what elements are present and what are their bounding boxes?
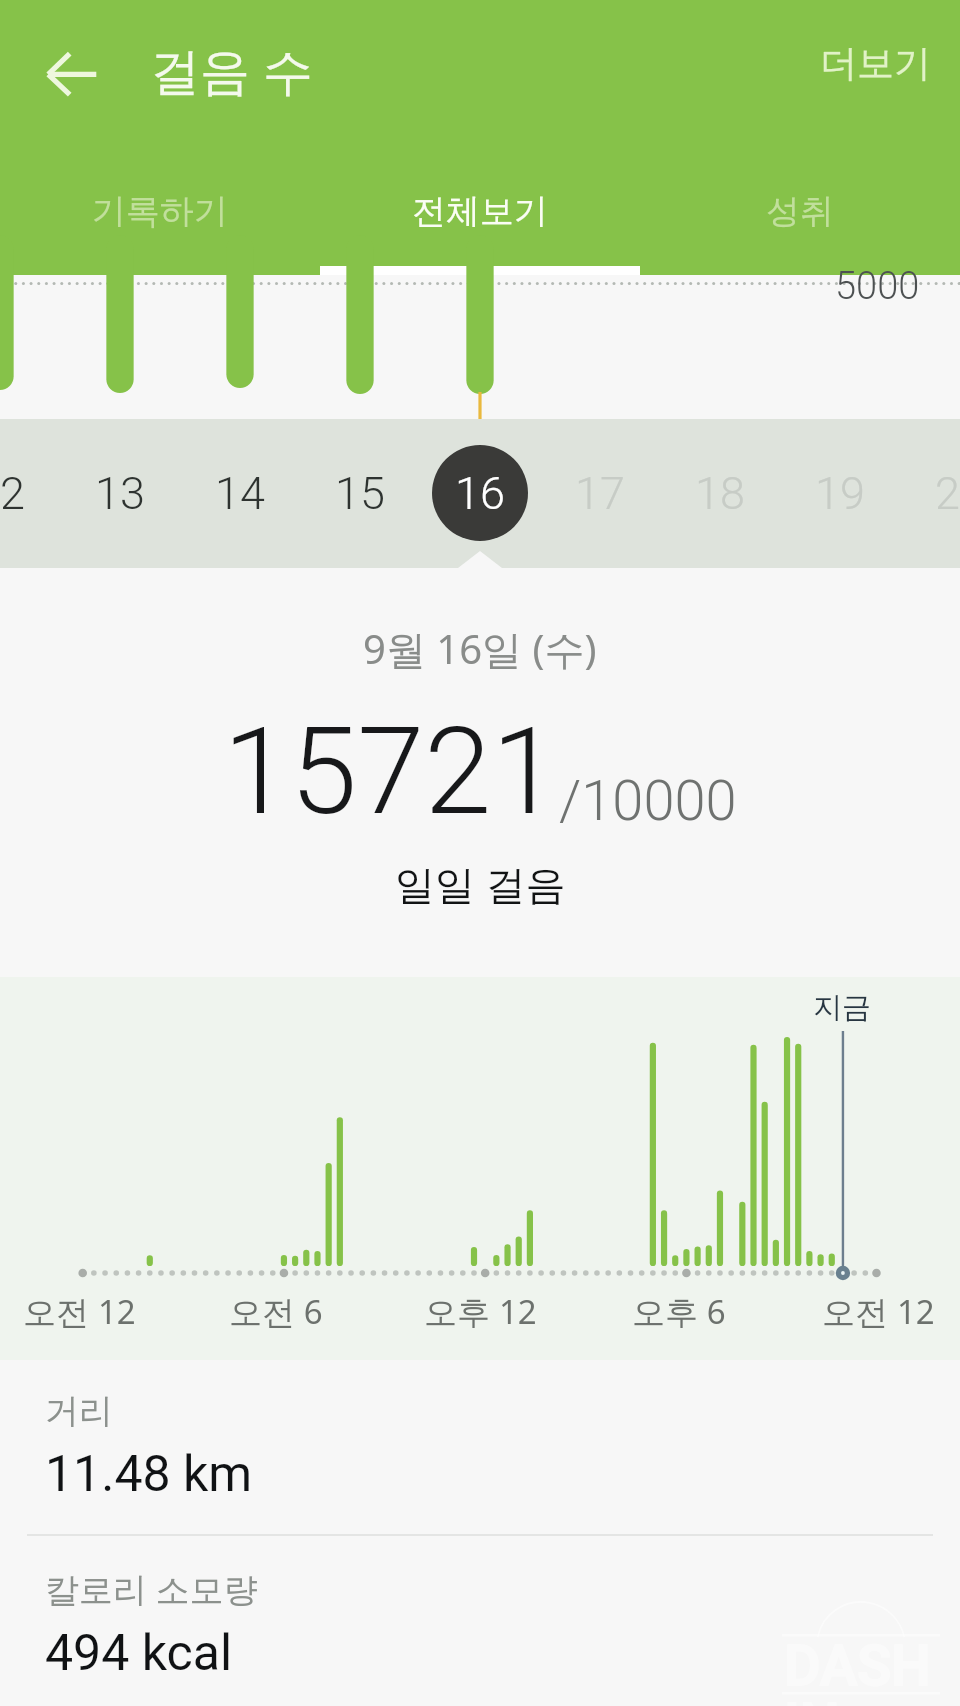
staticText: 18	[695, 467, 745, 520]
staticText: 오전 12	[822, 1289, 935, 1334]
button[interactable]: 15	[300, 419, 420, 568]
staticText: 성취	[766, 190, 834, 233]
button[interactable]: 거리	[0, 1360, 960, 1534]
staticText: 5000	[835, 264, 920, 309]
staticText: 11.48 km	[45, 1445, 253, 1504]
staticText: 더보기	[820, 40, 931, 87]
staticText: 14	[215, 467, 265, 520]
button[interactable]: 칼로리 소모량	[0, 1536, 960, 1706]
staticText: 12	[0, 467, 25, 520]
staticText: 17	[575, 467, 625, 520]
staticText: 오전 12	[23, 1289, 136, 1334]
staticText: 15721	[223, 701, 559, 843]
staticText: 일일 걸음	[395, 856, 566, 911]
staticText: 13	[95, 467, 145, 520]
staticText: 오후 12	[424, 1289, 537, 1334]
staticText: 오전 6	[229, 1289, 323, 1334]
button[interactable]: 16	[420, 419, 540, 568]
staticText: 지금	[813, 989, 871, 1026]
button[interactable]: 기록하기	[0, 148, 320, 275]
staticText: 16	[455, 467, 505, 520]
staticText: 20	[935, 467, 960, 520]
button[interactable]: 18	[660, 419, 780, 568]
staticText: 494 kcal	[45, 1624, 233, 1676]
staticText: 15	[335, 467, 385, 520]
staticText: 19	[815, 467, 865, 520]
button[interactable]: 전체보기	[320, 148, 640, 275]
button[interactable]: Back	[28, 34, 114, 114]
staticText: 걸음 수	[150, 36, 313, 104]
button[interactable]: 13	[60, 419, 180, 568]
staticText: /10000	[559, 768, 737, 834]
staticText: 오후 6	[632, 1289, 726, 1334]
button[interactable]: 20	[900, 419, 960, 568]
button[interactable]: 성취	[640, 148, 960, 275]
button[interactable]: 더보기	[800, 24, 951, 103]
staticText: 기록하기	[92, 190, 228, 233]
staticText: 9월 16일 (수)	[363, 621, 597, 676]
button[interactable]: 14	[180, 419, 300, 568]
staticText: 전체보기	[412, 190, 548, 233]
staticText: 거리	[45, 1390, 113, 1433]
button[interactable]: 12	[0, 419, 60, 568]
staticText: 칼로리 소모량	[45, 1566, 258, 1612]
